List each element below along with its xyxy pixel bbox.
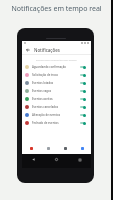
button[interactable]: Calendar (40, 143, 57, 154)
staticText: Eventos lotados (32, 81, 54, 85)
button[interactable]: Back (22, 154, 45, 165)
staticText: Notificações em tempo real (0, 4, 113, 14)
button[interactable]: Fechado de eventos (22, 119, 91, 127)
staticText: Fechado de eventos (32, 121, 59, 125)
staticText: Escolha quais notificações quer receber (36, 59, 77, 62)
button[interactable]: Home (45, 154, 68, 165)
button[interactable]: Recent apps (68, 154, 91, 165)
button[interactable]: Alteração de eventos (22, 111, 91, 119)
staticText: Solicitação de troca (32, 73, 58, 77)
staticText: Eventos vagos (32, 89, 52, 93)
staticText: Eventos aceitos (32, 97, 53, 101)
staticText: Alteração de eventos (32, 113, 60, 117)
button[interactable]: List (57, 143, 74, 154)
button[interactable]: Solicitação de troca (22, 71, 91, 79)
button[interactable]: Back (24, 46, 31, 53)
button[interactable]: Eventos aceitos (22, 95, 91, 103)
button[interactable]: Eventos lotados (22, 79, 91, 87)
button[interactable]: Eventos vagos (22, 87, 91, 95)
button[interactable]: Eventos cancelados (22, 103, 91, 111)
staticText: Eventos cancelados (32, 105, 59, 109)
button[interactable]: Profile (74, 143, 91, 154)
button[interactable]: Home (22, 143, 40, 154)
button[interactable]: Aguardando confirmação (22, 63, 91, 71)
staticText: Notificações (34, 47, 60, 53)
staticText: Aguardando confirmação (32, 65, 67, 69)
